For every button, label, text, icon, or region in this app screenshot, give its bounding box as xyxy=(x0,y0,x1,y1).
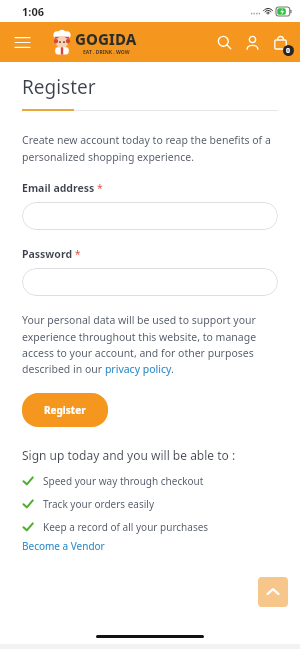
button[interactable]: Menu xyxy=(8,28,36,56)
button[interactable]: Scroll to top xyxy=(258,577,288,607)
staticText: Email address * xyxy=(22,181,103,195)
staticText: Become a Vendor xyxy=(22,539,105,553)
staticText: Password * xyxy=(22,247,81,261)
staticText: Track your orders easily xyxy=(43,497,154,511)
staticText: Speed your way through checkout xyxy=(43,474,204,488)
staticText: Create new account today to reap the ben… xyxy=(22,133,278,164)
button[interactable]: Email address input xyxy=(22,202,278,230)
button[interactable]: Search xyxy=(210,28,238,56)
button[interactable]: Password input xyxy=(22,268,278,296)
button[interactable]: GOGIDA xyxy=(52,29,137,56)
button[interactable]: Account xyxy=(238,28,266,56)
staticText: GOGIDA xyxy=(75,29,137,49)
staticText: Register xyxy=(22,74,96,100)
staticText: 0 xyxy=(286,46,291,56)
staticText: 1:06 xyxy=(22,4,44,19)
staticText: Your personal data will be used to suppo… xyxy=(22,313,278,376)
staticText: Keep a record of all your purchases xyxy=(43,520,209,534)
button[interactable]: Register xyxy=(22,393,108,427)
staticText: Register xyxy=(44,403,86,417)
staticText: EAT . DRINK . WOW xyxy=(83,49,130,56)
staticText: Sign up today and you will be able to : xyxy=(22,447,236,463)
button[interactable]: Cart, 0 items xyxy=(266,28,294,56)
button[interactable]: Become a Vendor xyxy=(22,539,105,553)
